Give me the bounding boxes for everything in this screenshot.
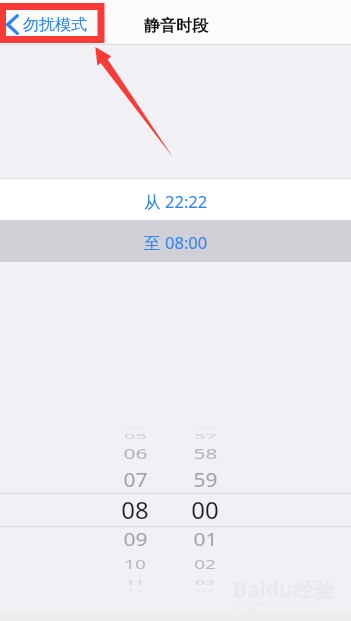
staticText: 11: [125, 578, 145, 587]
staticText: 04: [124, 425, 146, 431]
staticText: 05: [124, 432, 147, 441]
staticText: 57: [194, 432, 217, 441]
staticText: 08: [121, 493, 149, 526]
staticText: 至 08:00: [144, 231, 208, 254]
staticText: 07: [123, 467, 148, 494]
staticText: 静音时段: [144, 16, 208, 36]
staticText: 勿扰模式: [23, 15, 87, 35]
staticText: 59: [193, 467, 218, 494]
staticText: 02: [194, 555, 216, 573]
other: Back: [6, 14, 19, 35]
staticText: 从 22:22: [144, 190, 208, 213]
staticText: 10: [124, 555, 146, 573]
button[interactable]: 至 08:00: [0, 220, 351, 262]
button[interactable]: Back: [6, 14, 87, 35]
staticText: 06: [123, 444, 148, 464]
staticText: 00: [191, 493, 219, 526]
staticText: 09: [123, 527, 148, 552]
staticText: 03: [195, 578, 215, 587]
button[interactable]: 从 22:22: [0, 180, 351, 220]
staticText: Baidu经验: [233, 575, 335, 604]
staticText: 58: [193, 444, 218, 464]
staticText: 01: [193, 527, 218, 552]
